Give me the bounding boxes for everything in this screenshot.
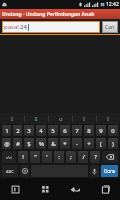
- button[interactable]: I: [73, 113, 96, 124]
- button[interactable]: I: [0, 113, 24, 124]
- button[interactable]: :: [54, 151, 64, 163]
- button[interactable]: %: [36, 138, 46, 149]
- button[interactable]: Recents: [90, 178, 120, 200]
- button[interactable]: I: [25, 113, 48, 124]
- button[interactable]: (: [96, 138, 106, 149]
- button[interactable]: =\<: [2, 151, 16, 163]
- button[interactable]: Back: [60, 178, 90, 200]
- button[interactable]: ?: [90, 151, 100, 163]
- button[interactable]: @: [2, 138, 11, 149]
- button[interactable]: Emoji: [20, 165, 29, 177]
- staticText: 5: [51, 127, 55, 135]
- staticText: Undang - Undang Perlindungan Anak: [2, 11, 95, 18]
- staticText: (: [100, 140, 102, 148]
- button[interactable]: /: [78, 151, 88, 163]
- staticText: ;: [70, 153, 72, 161]
- staticText: 8: [87, 127, 91, 135]
- staticText: ": [34, 153, 37, 161]
- staticText: ': [46, 153, 48, 161]
- staticText: pasal: [4, 23, 19, 31]
- staticText: :: [58, 153, 60, 161]
- button[interactable]: ;: [66, 151, 76, 163]
- staticText: !: [22, 153, 24, 161]
- button[interactable]: 7: [72, 125, 82, 136]
- button[interactable]: 1: [2, 125, 11, 136]
- button[interactable]: I: [97, 113, 120, 124]
- staticText: 4: [39, 127, 43, 135]
- staticText: /: [82, 153, 85, 161]
- staticText: o: [59, 115, 63, 123]
- button[interactable]: o: [49, 113, 72, 124]
- staticText: *: [63, 140, 67, 148]
- button[interactable]: ): [108, 138, 118, 149]
- button[interactable]: ": [30, 151, 40, 163]
- staticText: 3: [27, 127, 31, 135]
- staticText: I: [83, 115, 86, 123]
- staticText: 2: [16, 127, 20, 135]
- button[interactable]: 9: [96, 125, 106, 136]
- staticText: ABC: [6, 169, 14, 174]
- staticText: $: [27, 140, 31, 148]
- staticText: 9: [99, 127, 103, 135]
- button[interactable]: Cari: [102, 21, 118, 33]
- staticText: 1: [5, 127, 9, 135]
- button[interactable]: 3: [24, 125, 34, 136]
- button[interactable]: !: [18, 151, 28, 163]
- staticText: +: [87, 140, 91, 148]
- staticText: 0: [111, 127, 115, 135]
- button[interactable]: Done: [101, 165, 118, 177]
- staticText: ): [112, 140, 114, 148]
- button[interactable]: 6: [60, 125, 70, 136]
- button[interactable]: 4: [36, 125, 46, 136]
- staticText: #: [16, 140, 20, 148]
- staticText: I: [35, 115, 38, 123]
- button[interactable]: +: [84, 138, 94, 149]
- staticText: I: [11, 115, 14, 123]
- staticText: 7: [75, 127, 79, 135]
- button[interactable]: Backspace: [102, 151, 118, 163]
- button[interactable]: 8: [84, 125, 94, 136]
- staticText: Cari: [105, 24, 115, 31]
- staticText: -: [76, 140, 78, 148]
- staticText: 12:42: [106, 1, 119, 8]
- button[interactable]: ABC: [2, 165, 18, 177]
- staticText: 6: [63, 127, 67, 135]
- button[interactable]: #: [13, 138, 22, 149]
- button[interactable]: &: [48, 138, 58, 149]
- button[interactable]: Menu: [0, 178, 30, 200]
- button[interactable]: pasal: [2, 21, 100, 33]
- staticText: %: [39, 140, 44, 148]
- button[interactable]: Voice input: [90, 165, 99, 177]
- button[interactable]: 2: [13, 125, 22, 136]
- button[interactable]: Apps: [30, 178, 60, 200]
- staticText: Done: [104, 168, 116, 174]
- button[interactable]: 5: [48, 125, 58, 136]
- staticText: =\<: [6, 155, 13, 160]
- staticText: &: [51, 140, 56, 148]
- button[interactable]: 0: [108, 125, 118, 136]
- button[interactable]: *: [60, 138, 70, 149]
- staticText: @: [4, 140, 10, 148]
- button[interactable]: -: [72, 138, 82, 149]
- button[interactable]: ': [42, 151, 52, 163]
- staticText: 24: [20, 23, 27, 31]
- button[interactable]: $: [24, 138, 34, 149]
- staticText: I: [107, 115, 110, 123]
- staticText: ?: [94, 153, 97, 161]
